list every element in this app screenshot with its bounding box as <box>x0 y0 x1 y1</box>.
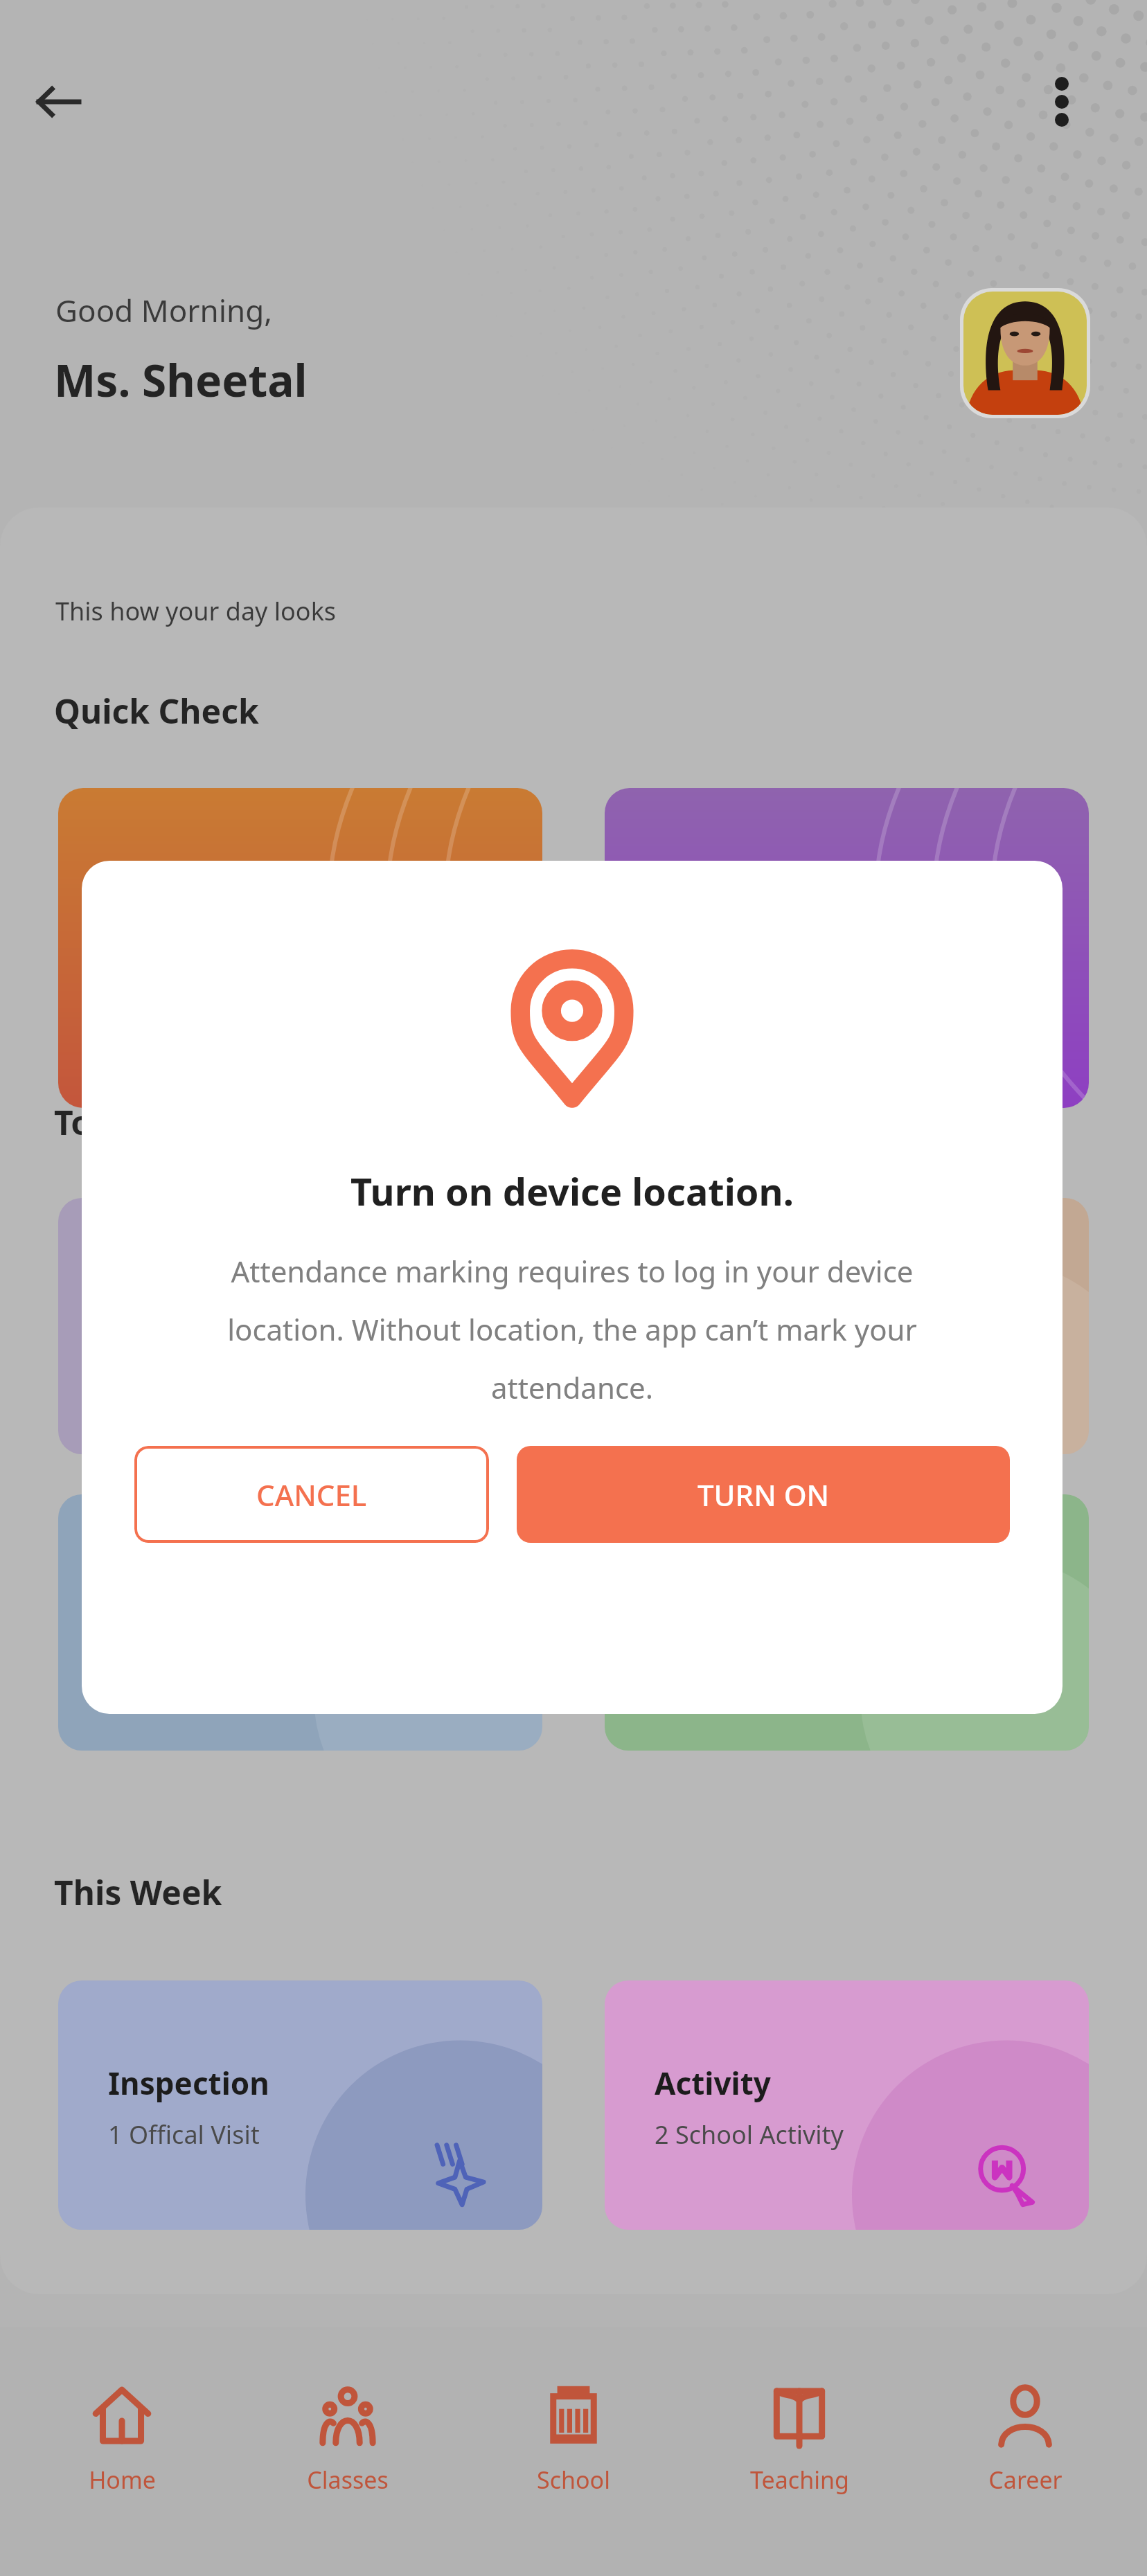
button[interactable]: Profile <box>963 292 1087 415</box>
staticText: Good Morning, <box>55 289 273 331</box>
staticText: Home <box>89 2464 156 2496</box>
button[interactable]: Inspection <box>58 1980 542 2230</box>
staticText: Career <box>988 2464 1062 2496</box>
button[interactable] <box>58 1494 542 1751</box>
staticText: Inspection <box>108 2062 269 2104</box>
button[interactable]: Teaching <box>695 2379 903 2503</box>
button[interactable]: Back <box>21 64 97 140</box>
staticText: Ms. Sheetal <box>54 350 308 410</box>
staticText: TURN ON <box>697 1475 830 1514</box>
staticText: 2 School Activity <box>655 2118 844 2152</box>
staticText: Quick Check <box>54 688 259 733</box>
button[interactable]: Career <box>921 2379 1129 2503</box>
staticText: Classes <box>307 2464 389 2496</box>
button[interactable]: More options <box>1024 64 1100 140</box>
staticText: This how your day looks <box>55 594 337 628</box>
button[interactable]: CANCEL <box>134 1446 489 1543</box>
button[interactable]: TURN ON <box>517 1446 1010 1543</box>
button[interactable]: Activity <box>605 1980 1089 2230</box>
staticText: CANCEL <box>256 1475 367 1514</box>
staticText: Today <box>54 1100 152 1145</box>
staticText: School <box>537 2464 610 2496</box>
button[interactable]: School <box>470 2379 677 2503</box>
button[interactable]: Home <box>18 2379 226 2503</box>
button[interactable]: Time Table <box>58 788 542 1108</box>
button[interactable] <box>605 1198 1089 1454</box>
staticText: This Week <box>54 1870 222 1915</box>
staticText: Activity <box>655 2062 771 2104</box>
staticText: Attendance marking requires to log in yo… <box>174 1251 970 1407</box>
staticText: Turn on device location. <box>350 1165 794 1217</box>
button[interactable] <box>58 1198 542 1454</box>
staticText: 1 Offical Visit <box>108 2118 260 2152</box>
button[interactable] <box>605 1494 1089 1751</box>
staticText: Teaching <box>750 2464 849 2496</box>
button[interactable]: Classes <box>244 2379 452 2503</box>
button[interactable]: Calendar <box>605 788 1089 1108</box>
